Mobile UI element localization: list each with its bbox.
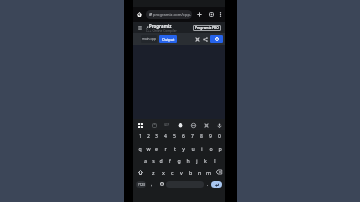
staticText: programiz.com/cpp-p <box>153 12 192 17</box>
button[interactable]: i <box>197 142 206 154</box>
button[interactable]: 3 <box>152 130 161 142</box>
button[interactable]: 1 <box>136 130 144 142</box>
button[interactable]: Output <box>159 35 177 43</box>
button[interactable]: Clipboard <box>150 121 158 129</box>
button[interactable]: Programiz PRO <box>193 25 221 31</box>
button[interactable]: q <box>136 142 144 154</box>
button[interactable]: x <box>158 166 168 178</box>
button[interactable]: o <box>206 142 215 154</box>
button[interactable]: Translate <box>189 121 197 129</box>
staticText: d <box>159 157 163 164</box>
button[interactable]: d <box>157 154 165 166</box>
button[interactable]: 6 <box>179 130 188 142</box>
staticText: 4 <box>164 133 167 140</box>
button[interactable]: m <box>204 166 213 178</box>
button[interactable]: Menu <box>137 25 143 31</box>
staticText: z <box>152 169 155 176</box>
button[interactable]: More options <box>217 11 224 18</box>
staticText: 5 <box>173 133 176 140</box>
staticText: y <box>182 145 185 152</box>
button[interactable]: c <box>168 166 177 178</box>
staticText: a <box>144 157 147 164</box>
staticText: m <box>206 169 212 176</box>
staticText: e <box>155 145 158 152</box>
button[interactable]: e <box>152 142 161 154</box>
button[interactable]: . <box>204 178 211 190</box>
staticText: g <box>177 157 181 164</box>
staticText: GIF <box>164 123 170 127</box>
button[interactable]: z <box>148 166 158 178</box>
staticText: 7 <box>191 133 194 140</box>
button[interactable]: b <box>186 166 195 178</box>
staticText: 9 <box>209 133 212 140</box>
staticText: n <box>198 169 202 176</box>
button[interactable]: l <box>210 154 219 166</box>
button[interactable]: Change language <box>158 178 166 190</box>
button[interactable]: 4 <box>161 130 170 142</box>
button[interactable]: 7 <box>188 130 197 142</box>
button[interactable]: t <box>170 142 179 154</box>
staticText: o <box>209 145 213 152</box>
staticText: Programiz PRO <box>195 26 219 30</box>
button[interactable]: Run <box>210 35 223 43</box>
button[interactable]: 0 <box>215 130 224 142</box>
button[interactable]: Shift <box>133 166 148 178</box>
button[interactable]: ?123 <box>136 181 146 188</box>
button[interactable]: p <box>215 142 224 154</box>
button[interactable]: 9 <box>206 130 215 142</box>
staticText: p <box>218 145 222 152</box>
button[interactable]: v <box>177 166 186 178</box>
button[interactable]: f <box>165 154 174 166</box>
staticText: main.cpp <box>142 37 156 41</box>
button[interactable]: s <box>149 154 157 166</box>
button[interactable]: Keyboard settings <box>202 121 210 129</box>
button[interactable]: j <box>192 154 201 166</box>
button[interactable]: Backspace <box>213 166 225 178</box>
staticText: 8 <box>200 133 203 140</box>
button[interactable]: k <box>201 154 210 166</box>
staticText: , <box>151 181 153 187</box>
staticText: t <box>174 145 176 152</box>
button[interactable]: a <box>141 154 149 166</box>
button[interactable]: u <box>188 142 197 154</box>
staticText: q <box>138 145 142 152</box>
button[interactable]: , <box>146 178 158 190</box>
staticText: x <box>162 169 165 176</box>
button[interactable]: r <box>161 142 170 154</box>
button[interactable]: Stickers <box>176 121 184 129</box>
button[interactable]: Home <box>136 11 143 18</box>
staticText: b <box>189 169 193 176</box>
button[interactable]: g <box>174 154 183 166</box>
button[interactable]: 8 <box>197 130 206 142</box>
staticText: 3 <box>155 133 158 140</box>
staticText: w <box>146 145 151 152</box>
staticText: f <box>169 157 171 164</box>
button[interactable]: h <box>183 154 192 166</box>
button[interactable]: n <box>195 166 204 178</box>
staticText: Output <box>162 37 175 42</box>
staticText: 6 <box>182 133 185 140</box>
button[interactable]: Enter <box>211 181 222 188</box>
staticText: i <box>201 145 203 152</box>
button[interactable]: Apps <box>136 121 144 129</box>
staticText: C++ Online Compiler <box>146 29 177 33</box>
staticText: . <box>207 181 209 187</box>
staticText: j <box>196 157 198 164</box>
button[interactable]: GIF <box>163 121 171 129</box>
button[interactable]: Share <box>202 36 209 43</box>
button[interactable]: Voice input <box>215 121 223 129</box>
staticText: Programiz <box>149 23 172 29</box>
button[interactable]: Switch tabs <box>208 11 215 18</box>
button[interactable]: main.cpp <box>141 35 157 43</box>
button[interactable]: Settings <box>194 36 201 43</box>
staticText: u <box>191 145 195 152</box>
button[interactable]: 2 <box>144 130 152 142</box>
button[interactable]: w <box>144 142 152 154</box>
button[interactable]: 5 <box>170 130 179 142</box>
staticText: 0 <box>218 133 221 140</box>
staticText: s <box>152 157 155 164</box>
button[interactable]: y <box>179 142 188 154</box>
button[interactable]: Space <box>166 181 204 188</box>
button[interactable]: New tab <box>196 11 203 18</box>
button[interactable]: programiz.com/cpp-p <box>146 10 192 19</box>
